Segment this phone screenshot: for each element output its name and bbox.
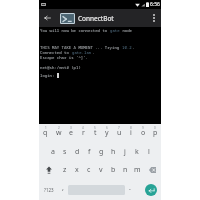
- staticText: .: [92, 50, 95, 55]
- staticText: You will now be connected to: [40, 28, 110, 33]
- staticText: 10.2: [122, 45, 132, 50]
- staticText: 4: [82, 126, 84, 130]
- staticText: 0: [154, 126, 156, 130]
- staticText: gate.lan: [72, 50, 92, 55]
- button[interactable]: a: [46, 141, 59, 159]
- staticText: b: [111, 165, 116, 175]
- staticText: l: [148, 147, 150, 157]
- staticText: 9: [142, 126, 144, 130]
- button[interactable]: c: [83, 159, 95, 177]
- button[interactable]: 0: [149, 124, 161, 141]
- staticText: 8: [130, 126, 132, 130]
- button[interactable]: d: [71, 141, 83, 159]
- button[interactable]: Enter: [145, 184, 157, 196]
- button[interactable]: n: [119, 159, 131, 177]
- staticText: j: [124, 147, 126, 157]
- button[interactable]: .: [125, 177, 135, 200]
- button[interactable]: Navigate up: [39, 9, 56, 27]
- staticText: n: [123, 165, 128, 175]
- staticText: 5: [94, 126, 96, 130]
- staticText: r: [82, 128, 85, 138]
- staticText: m: [134, 165, 141, 175]
- button[interactable]: 7: [113, 124, 125, 141]
- staticText: 6: [106, 126, 108, 130]
- button[interactable]: k: [131, 141, 143, 159]
- staticText: k: [135, 147, 139, 157]
- staticText: o: [141, 128, 146, 138]
- button[interactable]: x: [71, 159, 83, 177]
- staticText: v: [99, 165, 103, 175]
- staticText: h: [111, 147, 116, 157]
- button[interactable]: ,: [58, 177, 68, 200]
- staticText: Connected to: [40, 50, 72, 55]
- button[interactable]: l: [143, 141, 155, 159]
- button[interactable]: h: [107, 141, 119, 159]
- button[interactable]: b: [107, 159, 119, 177]
- staticText: q: [43, 128, 48, 138]
- button[interactable]: Backspace: [143, 159, 161, 177]
- staticText: 6:56: [150, 1, 160, 8]
- staticText: p: [153, 128, 158, 138]
- staticText: s: [63, 147, 67, 157]
- staticText: g: [99, 147, 104, 157]
- staticText: Escape char is '^]'.: [40, 55, 88, 60]
- button[interactable]: Shift: [39, 159, 58, 177]
- staticText: 2: [58, 126, 60, 130]
- staticText: node: [120, 28, 132, 33]
- button[interactable]: 3: [65, 124, 77, 141]
- button[interactable]: j: [119, 141, 131, 159]
- staticText: login:: [40, 73, 57, 78]
- button[interactable]: More options: [147, 9, 161, 27]
- button[interactable]: 2: [52, 124, 65, 141]
- button[interactable]: 6: [101, 124, 113, 141]
- staticText: net@sh:/mnt# (p1): [40, 65, 81, 70]
- button[interactable]: f: [83, 141, 95, 159]
- button[interactable]: ?123: [39, 177, 58, 200]
- button[interactable]: m: [131, 159, 143, 177]
- staticText: y: [105, 128, 109, 138]
- staticText: 7: [118, 126, 120, 130]
- staticText: d: [75, 147, 80, 157]
- button[interactable]: 5: [89, 124, 101, 141]
- staticText: a: [51, 147, 55, 157]
- button[interactable]: s: [59, 141, 71, 159]
- staticText: e: [69, 128, 73, 138]
- staticText: z: [63, 165, 67, 175]
- staticText: ConnectBot: [78, 14, 114, 23]
- staticText: 3: [70, 126, 72, 130]
- staticText: t: [94, 128, 97, 138]
- staticText: .: [129, 183, 131, 193]
- staticText: THIS MAY TAKE A MOMENT ... Trying: [40, 45, 122, 50]
- staticText: i: [130, 128, 132, 138]
- button[interactable]: 8: [125, 124, 137, 141]
- button[interactable]: v: [95, 159, 107, 177]
- button[interactable]: z: [58, 159, 71, 177]
- button[interactable]: g: [95, 141, 107, 159]
- button[interactable]: 9: [137, 124, 149, 141]
- staticText: x: [75, 165, 79, 175]
- button[interactable]: 1: [39, 124, 52, 141]
- staticText: f: [88, 147, 91, 157]
- staticText: u: [117, 128, 122, 138]
- button[interactable]: 4: [77, 124, 89, 141]
- staticText: .: [132, 45, 135, 50]
- staticText: 1: [45, 126, 47, 130]
- staticText: ?123: [44, 187, 54, 193]
- staticText: ,: [62, 183, 64, 193]
- staticText: gate: [110, 28, 120, 33]
- staticText: c: [87, 165, 91, 175]
- staticText: w: [56, 128, 62, 138]
